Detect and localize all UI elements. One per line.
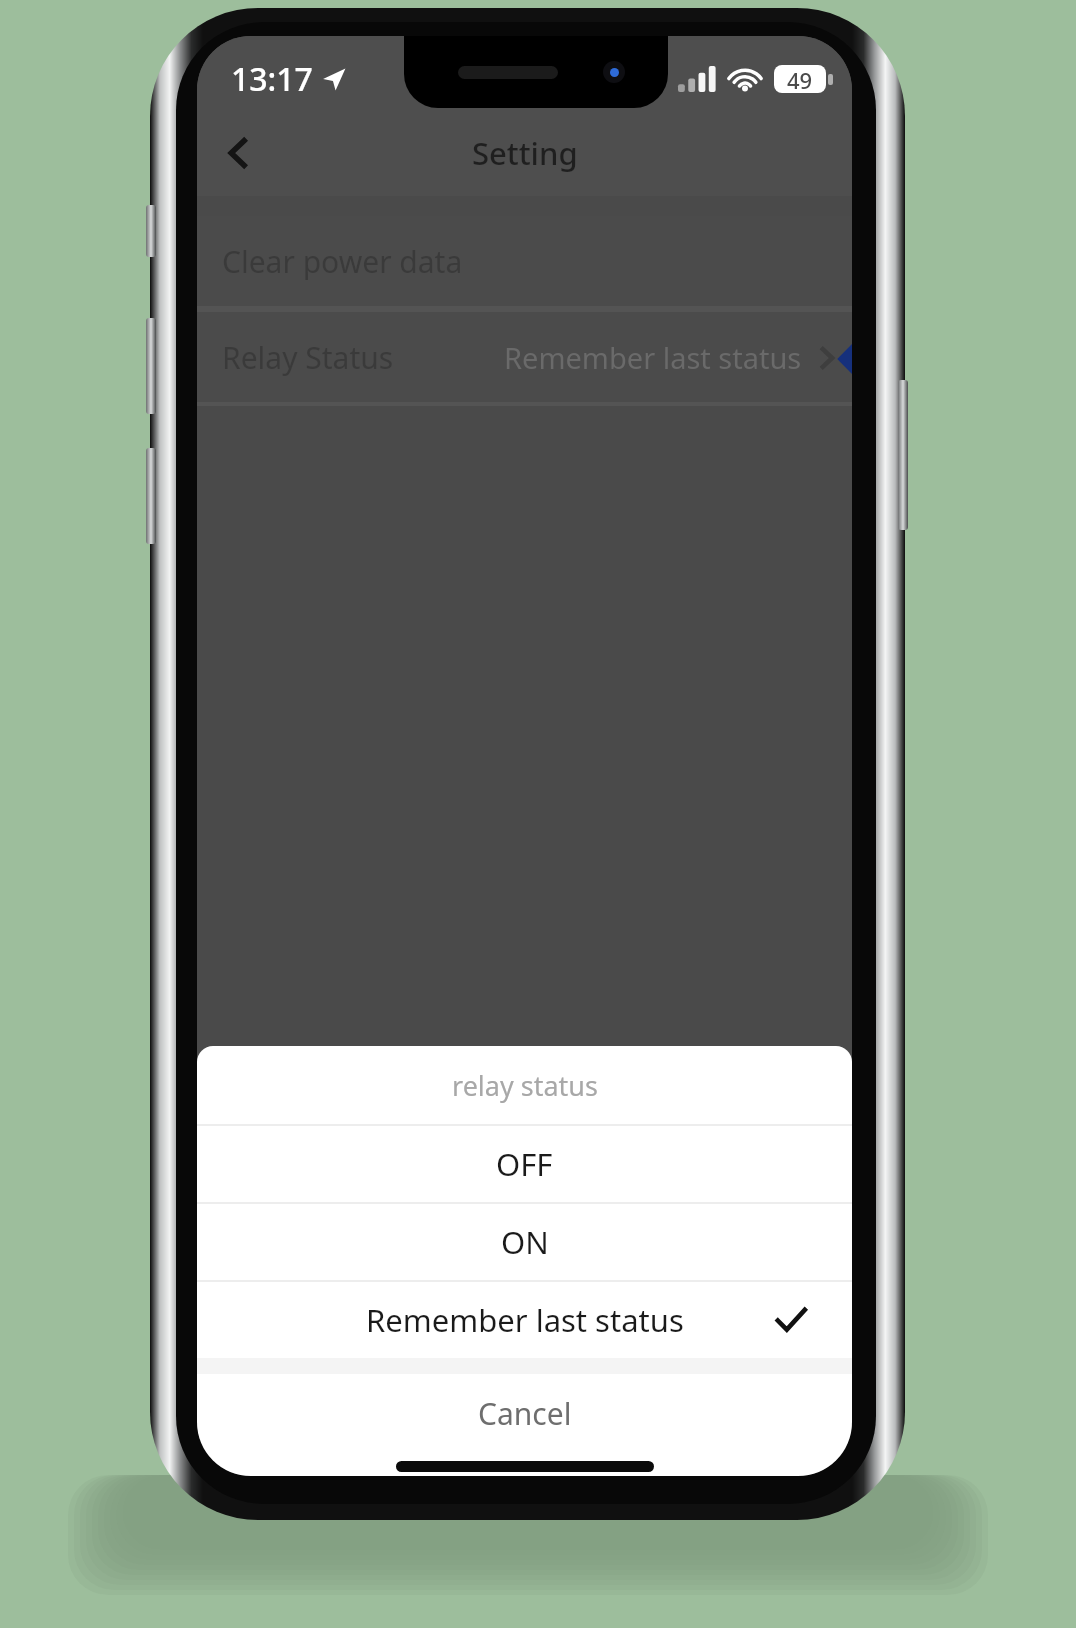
staticText: Relay Status — [222, 337, 394, 378]
button[interactable]: Relay Status — [197, 312, 852, 402]
staticText: ON — [501, 1221, 549, 1263]
staticText: Remember last status — [504, 338, 802, 377]
staticText: 13:17 — [231, 57, 313, 101]
staticText: Remember last status — [366, 1299, 684, 1341]
staticText: OFF — [496, 1143, 553, 1185]
button[interactable]: Cancel — [197, 1374, 852, 1452]
button[interactable]: Back — [203, 118, 273, 188]
staticText: Cancel — [478, 1393, 572, 1434]
button[interactable]: OFF — [197, 1126, 852, 1202]
button[interactable]: Remember last status — [197, 1282, 852, 1358]
staticText: Clear power data — [222, 241, 463, 282]
button[interactable]: ON — [197, 1204, 852, 1280]
staticText: relay status — [452, 1067, 598, 1104]
staticText: 49 — [787, 65, 813, 93]
staticText: Setting — [472, 132, 578, 174]
